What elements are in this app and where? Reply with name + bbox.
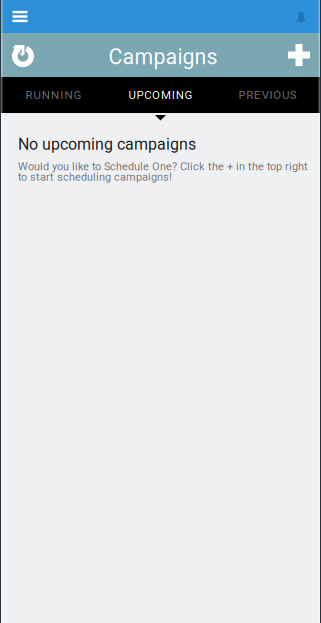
staticText: U	[34, 88, 41, 102]
staticText: G	[184, 88, 192, 102]
staticText: M	[161, 88, 171, 102]
staticText: O	[273, 88, 281, 102]
staticText: P	[136, 88, 143, 102]
staticText: Campaigns	[108, 44, 217, 69]
button[interactable]: Notifications	[286, 0, 316, 32]
staticText: to start scheduling campaigns!	[18, 170, 172, 183]
staticText: S	[290, 88, 297, 102]
button[interactable]: Add campaign	[277, 33, 321, 77]
staticText: U	[282, 88, 289, 102]
staticText: No upcoming campaigns	[18, 135, 196, 154]
staticText: N	[64, 88, 72, 102]
button[interactable]: P	[214, 77, 321, 113]
staticText: I	[269, 88, 272, 102]
button[interactable]: Menu	[4, 0, 36, 32]
staticText: R	[246, 88, 253, 102]
staticText: N	[42, 88, 50, 102]
staticText: N	[176, 88, 184, 102]
staticText: C	[144, 88, 151, 102]
staticText: I	[172, 88, 175, 102]
button[interactable]: Refresh	[0, 33, 46, 77]
staticText: V	[262, 88, 269, 102]
staticText: R	[25, 88, 32, 102]
staticText: Would you like to Schedule One? Click th…	[18, 160, 308, 173]
staticText: U	[128, 88, 135, 102]
staticText: N	[51, 88, 59, 102]
staticText: E	[254, 88, 261, 102]
staticText: P	[238, 88, 245, 102]
staticText: G	[74, 88, 82, 102]
staticText: O	[152, 88, 160, 102]
button[interactable]: U	[107, 77, 214, 113]
button[interactable]: R	[0, 77, 107, 113]
staticText: I	[60, 88, 63, 102]
